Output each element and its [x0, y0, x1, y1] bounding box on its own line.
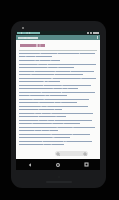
- button[interactable]: [19, 127, 97, 134]
- button[interactable]: Back: [16, 159, 44, 170]
- button[interactable]: [19, 92, 97, 99]
- button[interactable]: [19, 99, 97, 106]
- button[interactable]: [19, 60, 97, 64]
- button[interactable]: Home: [44, 159, 72, 170]
- button[interactable]: [19, 106, 97, 113]
- button[interactable]: [19, 113, 97, 120]
- button[interactable]: [19, 53, 97, 60]
- button[interactable]: [19, 71, 97, 78]
- button[interactable]: [19, 78, 97, 85]
- button[interactable]: [19, 141, 97, 148]
- button[interactable]: [19, 120, 97, 127]
- button[interactable]: [19, 64, 97, 71]
- button[interactable]: Recent apps: [72, 159, 100, 170]
- button[interactable]: [19, 134, 97, 141]
- button[interactable]: [19, 85, 97, 92]
- button[interactable]: [16, 35, 100, 40]
- button[interactable]: Zoom controls: [55, 151, 88, 156]
